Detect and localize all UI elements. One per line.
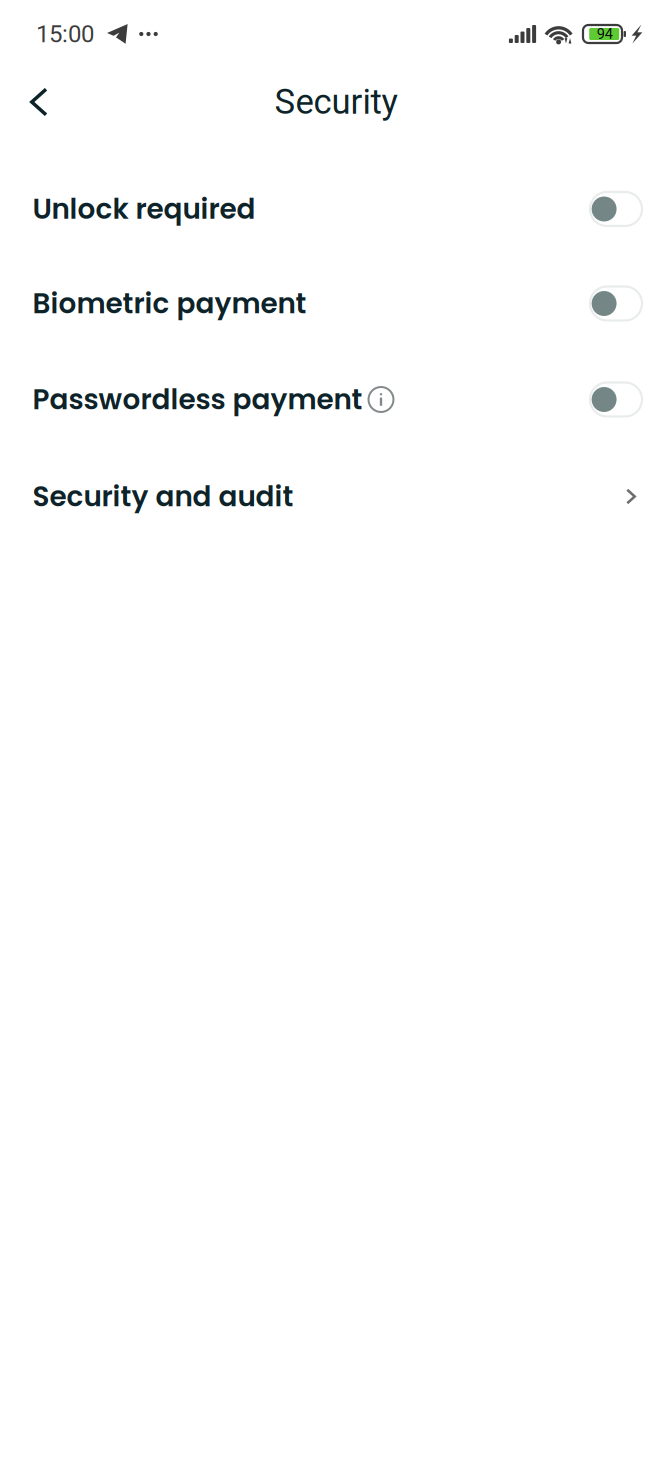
staticText: Passwordless payment — [32, 380, 362, 419]
staticText: Security — [274, 82, 397, 122]
button[interactable]: Unlock required — [0, 162, 668, 256]
staticText: Security and audit — [32, 477, 293, 516]
staticText: 94 — [597, 25, 613, 43]
button[interactable]: Biometric payment — [0, 256, 668, 351]
staticText: Unlock required — [32, 189, 255, 228]
button[interactable]: Passwordless payment — [0, 351, 668, 448]
button[interactable]: Security and audit — [0, 448, 668, 545]
button[interactable]: Back — [11, 74, 67, 130]
staticText: Biometric payment — [32, 284, 306, 323]
staticText: 15:00 — [36, 20, 94, 48]
